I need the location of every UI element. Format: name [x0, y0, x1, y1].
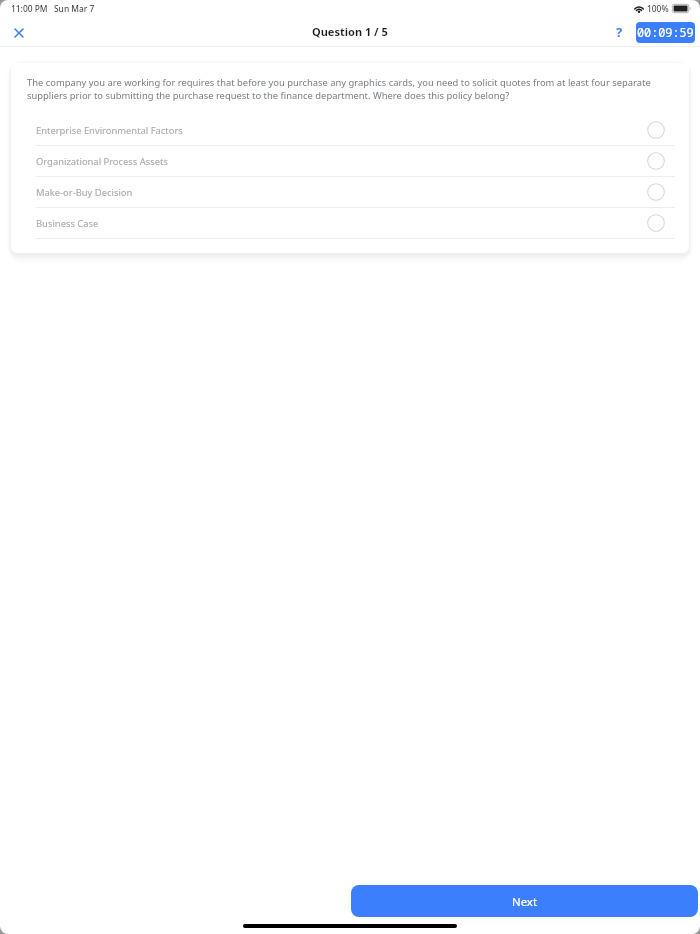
button[interactable]: Business Case	[11, 208, 689, 238]
staticText: Organizational Process Assets	[36, 155, 647, 168]
staticText: Next	[512, 894, 537, 910]
staticText: Sun Mar 7	[54, 3, 95, 14]
staticText: Make-or-Buy Decision	[36, 186, 647, 199]
button[interactable]: Help	[609, 23, 629, 43]
button[interactable]: Organizational Process Assets	[11, 146, 689, 176]
staticText: The company you are working for requires…	[27, 76, 673, 102]
button[interactable]: Next	[351, 885, 698, 917]
button[interactable]: 00:09:59	[636, 22, 695, 43]
staticText: 100%	[647, 3, 669, 14]
staticText: ?	[616, 23, 623, 41]
staticText: Business Case	[36, 217, 647, 230]
staticText: Question 1 / 5	[312, 24, 388, 39]
staticText: 00:09:59	[637, 24, 694, 40]
staticText: 11:00 PM	[11, 3, 48, 14]
button[interactable]: Enterprise Environmental Factors	[11, 115, 689, 145]
button[interactable]: Make-or-Buy Decision	[11, 177, 689, 207]
staticText: Enterprise Environmental Factors	[36, 124, 647, 137]
button[interactable]: Close	[8, 22, 29, 43]
